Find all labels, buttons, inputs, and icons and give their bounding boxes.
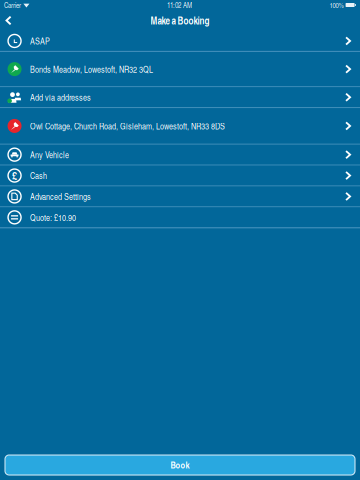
staticText: ASAP bbox=[30, 35, 50, 47]
button[interactable]: Owl Cottage, Church Road, Gisleham, Lowe… bbox=[0, 108, 360, 144]
staticText: Bonds Meadow, Lowestoft, NR32 3QL bbox=[30, 63, 153, 75]
button[interactable]: Bonds Meadow, Lowestoft, NR32 3QL bbox=[0, 52, 360, 86]
button[interactable]: ASAP bbox=[0, 31, 360, 51]
button[interactable]: £ bbox=[0, 166, 360, 185]
button[interactable]: Book bbox=[5, 455, 355, 475]
staticText: £ bbox=[12, 168, 17, 183]
staticText: Carrier bbox=[4, 0, 21, 10]
staticText: Any Vehicle bbox=[30, 149, 69, 161]
staticText: 11:02 AM bbox=[167, 0, 192, 10]
staticText: Book bbox=[170, 459, 189, 471]
staticText: 100% bbox=[330, 0, 344, 10]
button[interactable]: Quote: £10.90 bbox=[0, 207, 360, 227]
staticText: Owl Cottage, Church Road, Gisleham, Lowe… bbox=[30, 120, 225, 132]
staticText: Cash bbox=[30, 169, 47, 182]
button[interactable]: Add via addresses bbox=[0, 87, 360, 107]
staticText: Make a Booking bbox=[150, 13, 209, 27]
staticText: Add via addresses bbox=[30, 91, 91, 103]
staticText: Quote: £10.90 bbox=[30, 211, 76, 223]
staticText: Advanced Settings bbox=[30, 190, 91, 202]
button[interactable]: Any Vehicle bbox=[0, 145, 360, 165]
button[interactable]: Back bbox=[0, 10, 17, 31]
button[interactable]: Advanced Settings bbox=[0, 186, 360, 206]
